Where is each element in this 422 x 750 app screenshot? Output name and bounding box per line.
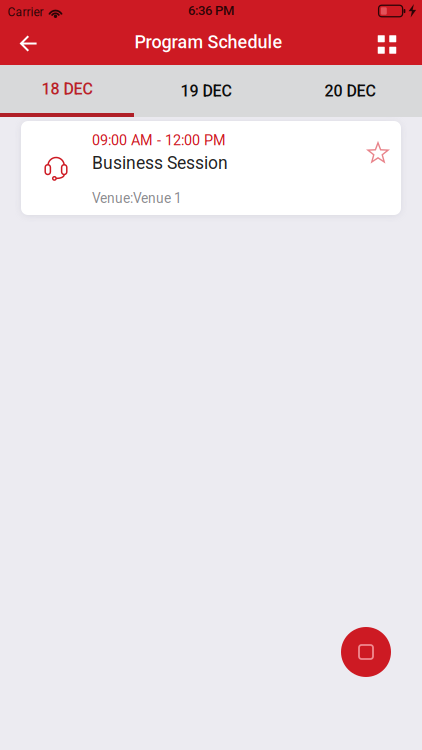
button[interactable]: 09:00 AM - 12:00 PM — [21, 121, 401, 215]
button[interactable]: 19 DEC — [134, 65, 278, 117]
staticText: Carrier — [7, 5, 43, 19]
staticText: Business Session — [92, 153, 228, 173]
button[interactable]: 18 DEC — [0, 65, 134, 117]
staticText: 18 DEC — [41, 80, 92, 98]
staticText: Venue:Venue 1 — [92, 190, 182, 206]
staticText: 19 DEC — [180, 82, 231, 100]
staticText: 09:00 AM - 12:00 PM — [92, 132, 226, 149]
button[interactable]: Back — [0, 20, 58, 65]
staticText: 6:36 PM — [188, 3, 234, 18]
button[interactable]: Grid view — [359, 19, 422, 66]
button[interactable]: 20 DEC — [278, 65, 422, 117]
staticText: Program Schedule — [134, 31, 282, 53]
staticText: 20 DEC — [324, 82, 375, 100]
button[interactable]: Add event — [341, 627, 391, 677]
